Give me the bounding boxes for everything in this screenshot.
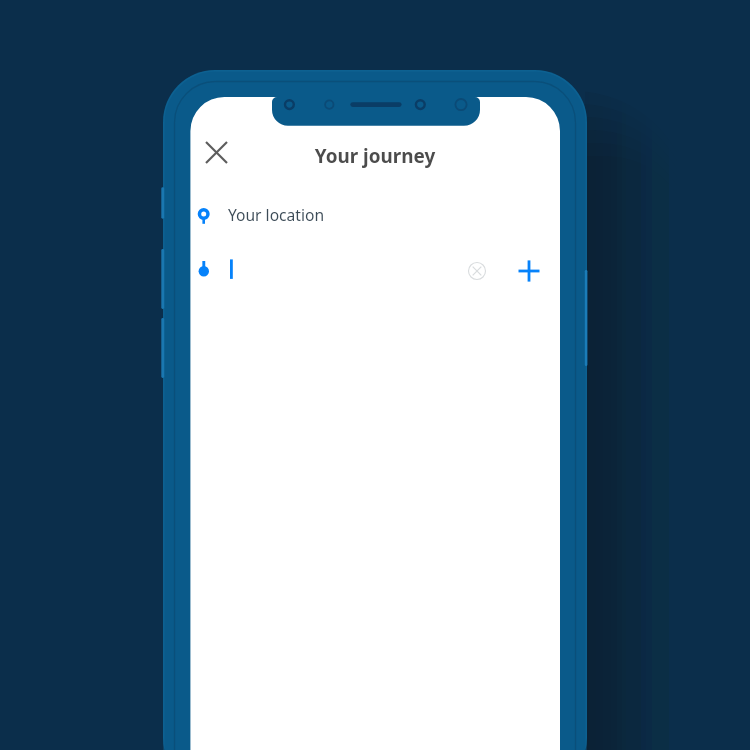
button[interactable]: Clear — [457, 251, 497, 291]
button[interactable]: Close — [196, 132, 237, 173]
staticText: Your location — [228, 204, 325, 225]
staticText: Your journey — [190, 143, 560, 169]
button[interactable]: Enter destination — [190, 248, 440, 294]
button[interactable]: Your location — [190, 191, 560, 237]
button[interactable]: Add stop — [509, 251, 549, 291]
